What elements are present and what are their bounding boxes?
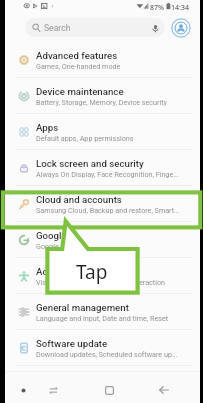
button[interactable]: Google (5, 222, 200, 258)
button[interactable]: Tap (47, 250, 137, 294)
button[interactable]: Advanced features (5, 42, 200, 78)
staticText: General management (36, 302, 129, 313)
staticText: Tap (76, 259, 108, 285)
staticText: Download updates, Scheduled software up.… (36, 350, 178, 358)
staticText: Language and input, Date and time, Reset (36, 314, 169, 322)
button[interactable]: Software update (5, 330, 200, 366)
button[interactable]: General management (5, 294, 200, 330)
staticText: 87% (150, 3, 164, 13)
button[interactable]: Home (98, 379, 120, 401)
staticText: Always On Display, Face Recognition, Fin… (36, 170, 179, 178)
button[interactable]: Device maintenance (5, 78, 200, 114)
button[interactable]: Menu (12, 379, 34, 401)
staticText: Google settings (36, 242, 87, 250)
button[interactable]: Voice search (149, 22, 161, 34)
button[interactable]: Search (25, 18, 165, 37)
staticText: 14:34 (171, 3, 189, 13)
button[interactable]: Account (171, 18, 191, 38)
staticText: Google (36, 230, 67, 241)
staticText: Default apps, App permissions (36, 134, 134, 142)
staticText: Apps (36, 122, 59, 133)
staticText: Battery, Storage, Memory, Device securit… (36, 98, 167, 106)
button[interactable]: Back (153, 379, 175, 401)
staticText: Advanced features (36, 50, 118, 61)
staticText: Accessibility (36, 266, 91, 277)
button[interactable]: Accessibility (5, 258, 200, 294)
staticText: Device maintenance (36, 86, 124, 97)
button[interactable]: Apps (5, 114, 200, 150)
staticText: Vision, Hearing, Dexterity and interacti… (36, 278, 165, 286)
button[interactable]: Recent apps (42, 379, 64, 401)
staticText: Games, One-handed mode (36, 62, 121, 70)
button[interactable]: Cloud and accounts (5, 186, 200, 222)
staticText: Software update (36, 338, 108, 349)
staticText: Search (44, 23, 71, 33)
staticText: Samsung Cloud, Backup and restore, Smart… (36, 206, 180, 214)
staticText: Cloud and accounts (36, 194, 122, 205)
button[interactable]: Lock screen and security (5, 150, 200, 186)
staticText: Lock screen and security (36, 158, 144, 169)
